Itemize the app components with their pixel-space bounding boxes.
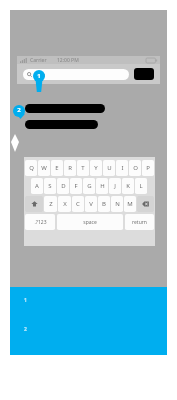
button[interactable]: E [51,160,63,176]
button[interactable]: P [142,160,154,176]
button[interactable]: Search result two [25,120,98,129]
staticText: I [121,164,124,172]
staticText: J [114,182,116,190]
staticText: N [115,200,120,208]
button[interactable]: 1 [24,297,157,304]
staticText: R [68,164,72,172]
button[interactable]: C [72,196,84,212]
staticText: 2 [24,326,27,333]
button[interactable]: D [57,178,69,194]
button[interactable]: R [64,160,76,176]
staticText: 1 [37,72,41,80]
staticText: F [74,182,78,190]
staticText: T [81,164,85,172]
button[interactable]: San [23,69,129,80]
button[interactable]: Shift [25,196,43,212]
button[interactable]: B [98,196,110,212]
staticText: Z [49,200,53,208]
staticText: L [139,182,143,190]
staticText: Carrier [30,57,47,64]
staticText: 2 [17,106,21,114]
button[interactable]: Z [44,196,57,212]
button[interactable]: K [122,178,134,194]
staticText: E [55,164,59,172]
button[interactable]: H [96,178,108,194]
button[interactable]: W [38,160,50,176]
staticText: G [87,182,92,190]
staticText: return [132,219,147,226]
button[interactable]: U [103,160,115,176]
staticText: D [61,182,66,190]
staticText: H [100,182,105,190]
staticText: 1 [24,297,27,304]
staticText: .?123 [34,219,47,226]
button[interactable]: S [44,178,56,194]
button[interactable]: V [85,196,97,212]
button[interactable]: Cancel [134,68,154,80]
staticText: U [107,164,112,172]
button[interactable]: O [129,160,141,176]
staticText: P [146,164,150,172]
staticText: X [63,200,67,208]
button[interactable]: space [57,214,123,230]
staticText: B [102,200,106,208]
button[interactable]: M [124,196,136,212]
staticText: M [127,200,133,208]
staticText: W [41,164,47,172]
button[interactable]: 2 [24,326,157,333]
button[interactable]: return [125,214,154,230]
button[interactable]: N [111,196,123,212]
button[interactable]: Y [90,160,102,176]
staticText: K [126,182,130,190]
staticText: San [35,71,46,79]
button[interactable]: L [135,178,147,194]
button[interactable]: Search result one [25,104,105,113]
staticText: 12:00 PM [57,57,79,64]
staticText: C [76,200,80,208]
button[interactable]: T [77,160,89,176]
staticText: V [89,200,93,208]
button[interactable]: I [116,160,128,176]
staticText: Q [29,164,34,172]
button[interactable]: G [83,178,95,194]
button[interactable]: J [109,178,121,194]
staticText: Y [94,164,98,172]
button[interactable]: Backspace [137,196,154,212]
button[interactable]: A [31,178,43,194]
button[interactable]: F [70,178,82,194]
button[interactable]: .?123 [25,214,55,230]
staticText: S [48,182,52,190]
staticText: space [83,219,97,226]
button[interactable]: X [58,196,71,212]
button[interactable]: Q [25,160,37,176]
staticText: O [133,164,138,172]
staticText: A [35,182,39,190]
